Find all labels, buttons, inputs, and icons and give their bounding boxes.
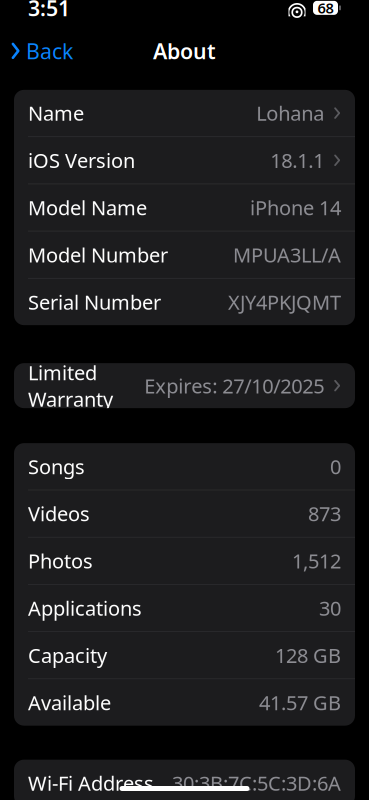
button[interactable]: Back — [0, 31, 83, 71]
staticText: Lohana — [256, 100, 324, 126]
staticText: About — [153, 37, 216, 65]
staticText: Capacity — [28, 642, 107, 668]
staticText: iPhone 14 — [250, 194, 341, 221]
staticText: Name — [28, 100, 84, 126]
staticText: Available — [28, 689, 111, 716]
staticText: Wi-Fi Address — [28, 770, 154, 796]
button[interactable]: Available — [14, 679, 355, 726]
button[interactable]: Model Number — [14, 231, 355, 278]
staticText: 128 GB — [275, 642, 341, 668]
staticText: MPUA3LL/A — [233, 241, 341, 268]
staticText: Serial Number — [28, 289, 161, 315]
staticText: Model Name — [28, 194, 147, 221]
staticText: Photos — [28, 547, 93, 574]
staticText: Videos — [28, 500, 90, 527]
staticText: 68 — [317, 0, 333, 18]
staticText: 41.57 GB — [259, 689, 341, 716]
button[interactable]: Model Name — [14, 184, 355, 231]
staticText: XJY4PKJQMT — [228, 289, 341, 315]
staticText: 873 — [308, 500, 341, 527]
button[interactable]: Limited Warranty — [14, 363, 355, 408]
staticText: 18.1.1 — [270, 147, 324, 174]
button[interactable]: iOS Version — [14, 137, 355, 184]
staticText: Back — [26, 37, 73, 65]
staticText: 30:3B:7C:5C:3D:6A — [172, 770, 341, 796]
staticText: 0 — [330, 453, 341, 480]
button[interactable]: Applications — [14, 585, 355, 631]
button[interactable]: Wi-Fi Address — [14, 760, 355, 800]
staticText: Model Number — [28, 241, 168, 268]
button[interactable]: Serial Number — [14, 279, 355, 325]
button[interactable]: Capacity — [14, 632, 355, 678]
staticText: 30 — [319, 595, 341, 621]
button[interactable]: Name — [14, 90, 355, 136]
staticText: Expires: 27/10/2025 — [144, 372, 324, 399]
button[interactable]: Photos — [14, 537, 355, 584]
staticText: Limited Warranty — [28, 359, 113, 412]
button[interactable]: Videos — [14, 490, 355, 537]
button[interactable]: Songs — [14, 443, 355, 490]
staticText: Songs — [28, 453, 85, 480]
staticText: 1,512 — [292, 547, 341, 574]
staticText: 3:51 — [28, 0, 70, 22]
staticText: Applications — [28, 595, 142, 621]
staticText: iOS Version — [28, 147, 135, 174]
